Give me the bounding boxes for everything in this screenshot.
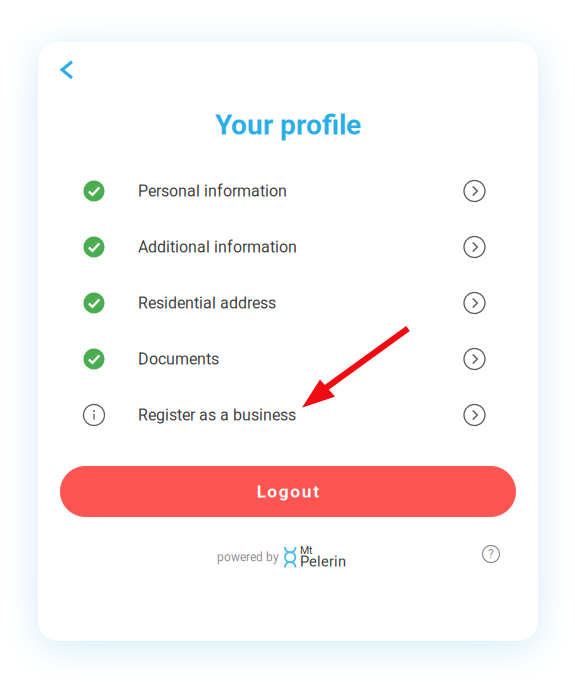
staticText: Register as a business bbox=[138, 406, 296, 424]
staticText: Your profile bbox=[215, 109, 361, 141]
staticText: ? bbox=[488, 547, 494, 561]
staticText: Documents bbox=[138, 350, 219, 368]
staticText: Mt bbox=[300, 544, 312, 556]
staticText: Pelerin bbox=[300, 553, 346, 570]
staticText: Additional information bbox=[138, 238, 297, 256]
button[interactable]: Back bbox=[44, 48, 90, 92]
button[interactable]: Help bbox=[475, 538, 507, 570]
button[interactable]: Additional information bbox=[38, 219, 538, 275]
button[interactable]: Register as a business bbox=[38, 387, 538, 443]
button[interactable]: Residential address bbox=[38, 275, 538, 331]
button[interactable]: Documents bbox=[38, 331, 538, 387]
button[interactable]: Personal information bbox=[38, 163, 538, 219]
button[interactable]: Logout bbox=[60, 466, 516, 517]
staticText: Residential address bbox=[138, 294, 276, 312]
staticText: Personal information bbox=[138, 182, 287, 200]
staticText: Logout bbox=[257, 481, 319, 502]
staticText: powered by bbox=[217, 550, 279, 564]
